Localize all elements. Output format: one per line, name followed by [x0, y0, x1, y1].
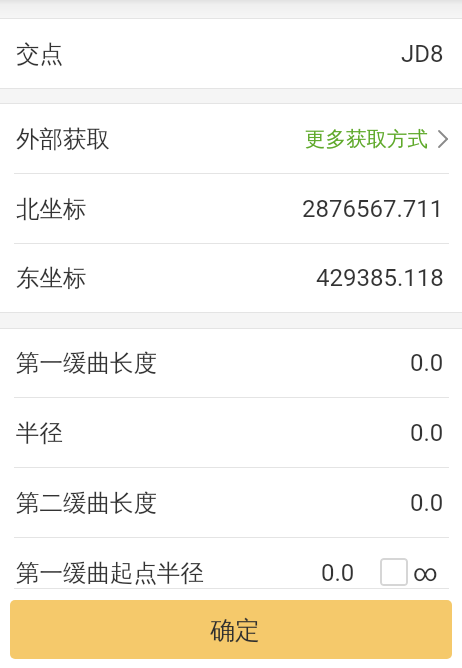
button[interactable]: 半径 [0, 398, 462, 467]
other: More acquisition methods [438, 130, 448, 148]
staticText: 0.0 [410, 419, 444, 447]
staticText: 更多获取方式 [305, 126, 428, 152]
staticText: 东坐标 [16, 263, 87, 293]
button[interactable]: 东坐标 [0, 244, 462, 312]
staticText: JD8 [401, 40, 444, 68]
button[interactable]: 交点 [0, 19, 462, 88]
button[interactable]: 第一缓曲起点半径 [0, 538, 462, 608]
staticText: 2876567.711 [302, 195, 444, 223]
staticText: 半径 [16, 418, 63, 448]
staticText: 第一缓曲长度 [16, 348, 157, 378]
staticText: 第一缓曲起点半径 [16, 558, 204, 588]
staticText: 北坐标 [16, 194, 87, 224]
button[interactable]: 北坐标 [0, 174, 462, 243]
button[interactable]: 确定 [10, 600, 452, 659]
staticText: 429385.118 [316, 264, 444, 292]
button[interactable]: 第二缓曲长度 [0, 468, 462, 537]
button[interactable]: Infinite radius checkbox [380, 558, 408, 586]
staticText: 0.0 [410, 349, 444, 377]
button[interactable]: 第一缓曲长度 [0, 329, 462, 397]
staticText: 第二缓曲长度 [16, 488, 157, 518]
staticText: ∞ [413, 559, 438, 587]
staticText: 外部获取 [16, 124, 110, 154]
staticText: 交点 [16, 39, 63, 69]
staticText: 0.0 [410, 489, 444, 517]
staticText: 确定 [210, 615, 260, 646]
button[interactable]: 外部获取 [0, 104, 462, 173]
staticText: 0.0 [321, 559, 355, 587]
